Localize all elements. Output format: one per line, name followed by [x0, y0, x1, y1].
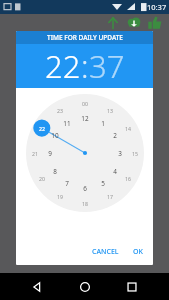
staticText: 37: [89, 45, 125, 87]
staticText: 9: [48, 149, 52, 158]
button[interactable]: CANCEL: [85, 243, 126, 261]
button[interactable]: 37: [89, 45, 125, 87]
staticText: CANCEL: [92, 247, 119, 257]
staticText: 5: [101, 179, 105, 188]
button[interactable]: Clock hour picker: [26, 94, 144, 212]
button[interactable]: 22: [45, 45, 81, 87]
staticText: TIME FOR DAILY UPDATE: [47, 33, 123, 42]
button[interactable]: Upload: [105, 15, 121, 31]
staticText: 21: [32, 150, 38, 157]
button[interactable]: Home: [74, 276, 96, 298]
staticText: 14: [125, 125, 131, 132]
staticText: 19: [57, 193, 63, 200]
button[interactable]: OK: [126, 243, 153, 261]
staticText: 22: [39, 125, 45, 132]
staticText: OK: [133, 247, 143, 257]
button[interactable]: Back: [26, 276, 48, 298]
staticText: 18: [82, 200, 88, 207]
staticText: 16: [125, 175, 131, 182]
staticText: 7: [65, 179, 69, 188]
staticText: 10: [51, 131, 59, 140]
staticText: 10:37: [147, 2, 167, 12]
staticText: 6: [83, 184, 87, 193]
staticText: 15: [132, 150, 138, 157]
staticText: 00: [82, 100, 88, 107]
staticText: 12: [81, 114, 89, 123]
staticText: 4: [113, 167, 117, 176]
staticText: 20: [39, 175, 45, 182]
staticText: 23: [57, 107, 63, 114]
staticText: 1: [101, 119, 105, 128]
staticText: 2: [113, 131, 117, 140]
staticText: 3: [118, 149, 122, 158]
staticText: 22: [45, 45, 81, 87]
button[interactable]: Recent apps: [121, 276, 143, 298]
staticText: 13: [107, 107, 113, 114]
button[interactable]: Like: [147, 15, 163, 31]
staticText: 11: [63, 119, 71, 128]
staticText: 17: [107, 193, 113, 200]
button[interactable]: Download: [126, 15, 142, 31]
staticText: 8: [53, 167, 57, 176]
staticText: :: [81, 45, 89, 87]
